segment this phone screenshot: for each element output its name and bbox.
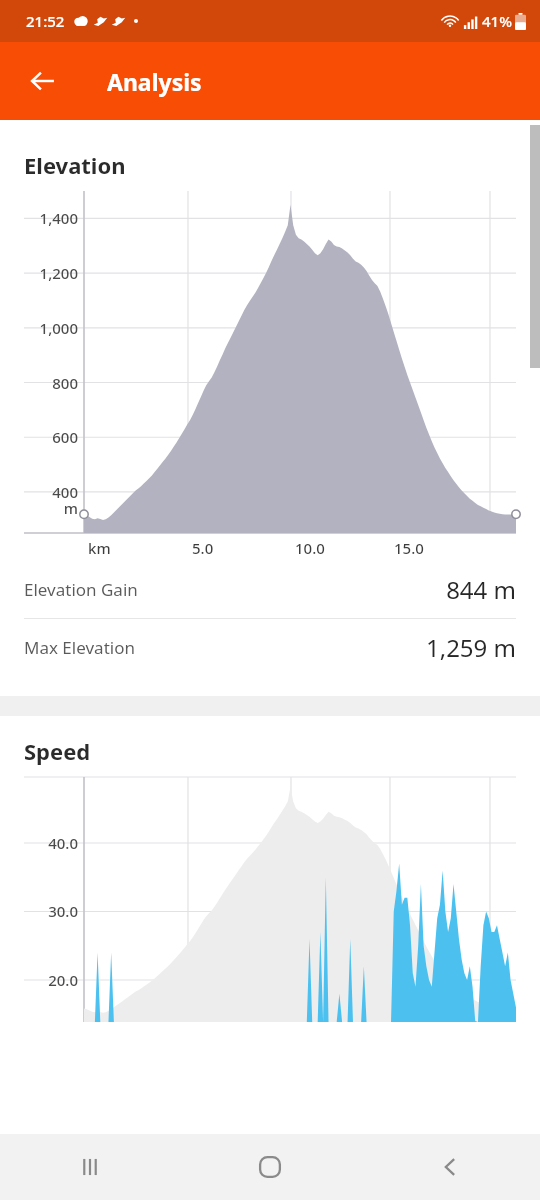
staticText: 41%: [482, 11, 512, 31]
staticText: 400: [0, 482, 78, 502]
button[interactable]: Home: [180, 1134, 360, 1200]
staticText: 15.0: [394, 538, 424, 558]
staticText: 21:52: [26, 11, 65, 31]
staticText: 600: [0, 427, 78, 447]
staticText: 800: [0, 373, 78, 393]
button[interactable]: Back: [360, 1134, 540, 1200]
button[interactable]: Recent apps: [0, 1134, 180, 1200]
staticText: Max Elevation: [24, 636, 135, 659]
staticText: m: [0, 498, 78, 518]
button[interactable]: Elevation Gain: [0, 561, 540, 618]
staticText: 10.0: [295, 538, 325, 558]
button[interactable]: Max Elevation: [0, 619, 540, 676]
staticText: 20.0: [0, 970, 78, 990]
staticText: Elevation Gain: [24, 578, 138, 601]
staticText: 40.0: [0, 833, 78, 853]
staticText: km: [88, 538, 111, 558]
staticText: Elevation: [24, 150, 126, 180]
staticText: 1,200: [0, 263, 78, 283]
staticText: 1,400: [0, 208, 78, 228]
staticText: 1,000: [0, 318, 78, 338]
staticText: Analysis: [107, 66, 202, 97]
button[interactable]: Back: [14, 52, 72, 110]
staticText: 844 m: [446, 573, 516, 606]
staticText: Speed: [24, 736, 91, 766]
staticText: 5.0: [192, 538, 214, 558]
staticText: 30.0: [0, 901, 78, 921]
staticText: 1,259 m: [425, 631, 516, 664]
